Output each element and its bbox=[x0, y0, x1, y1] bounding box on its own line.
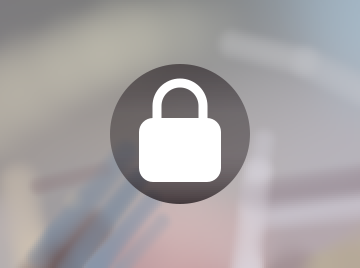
button[interactable]: Content locked bbox=[110, 64, 250, 204]
